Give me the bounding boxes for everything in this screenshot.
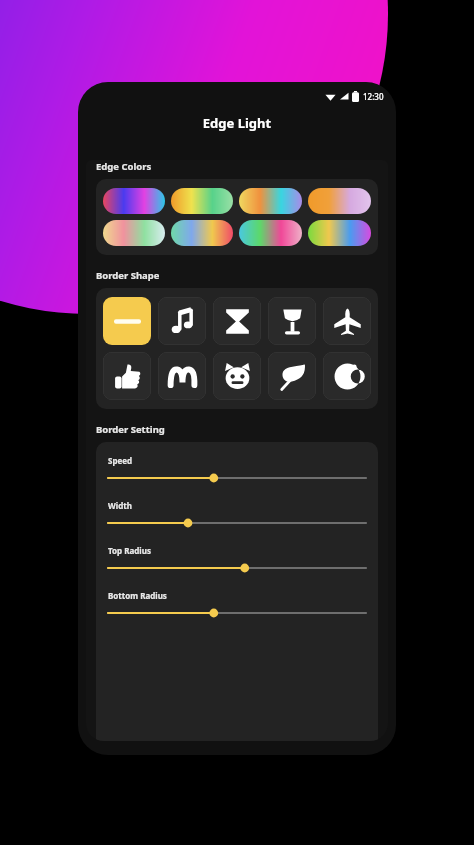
button[interactable]: Feather [268, 352, 316, 400]
button[interactable]: Edge color 1 [103, 188, 165, 214]
button[interactable]: Thumbs up [103, 352, 151, 400]
button[interactable]: None [103, 297, 151, 345]
button[interactable]: Speed slider [108, 471, 366, 485]
button[interactable]: Bottom Radius slider [108, 606, 366, 620]
staticText: Edge Light [86, 114, 388, 132]
staticText: Speed [108, 455, 133, 466]
button[interactable]: Edge color 2 [171, 188, 233, 214]
button[interactable]: Airplane [323, 297, 371, 345]
staticText: Top Radius [108, 545, 151, 556]
button[interactable]: Moon [323, 352, 371, 400]
button[interactable]: Edge color 4 [308, 188, 371, 214]
staticText: Width [108, 500, 132, 511]
button[interactable]: Edge color 7 [239, 220, 302, 246]
button[interactable]: Edge color 6 [171, 220, 233, 246]
button[interactable]: Edge color 3 [239, 188, 302, 214]
button[interactable]: Wine glass [268, 297, 316, 345]
button[interactable]: Top Radius slider [108, 561, 366, 575]
button[interactable]: Wave [158, 352, 206, 400]
button[interactable]: Edge color 5 [103, 220, 165, 246]
staticText: Bottom Radius [108, 590, 167, 601]
staticText: Border Setting [96, 423, 165, 436]
button[interactable]: Hourglass [213, 297, 261, 345]
button[interactable]: Edge color 8 [308, 220, 371, 246]
button[interactable]: Cat face [213, 352, 261, 400]
staticText: 12:30 [363, 91, 384, 102]
button[interactable]: Music [158, 297, 206, 345]
button[interactable]: Width slider [108, 516, 366, 530]
staticText: Border Shape [96, 269, 160, 282]
staticText: Edge Colors [96, 160, 152, 173]
